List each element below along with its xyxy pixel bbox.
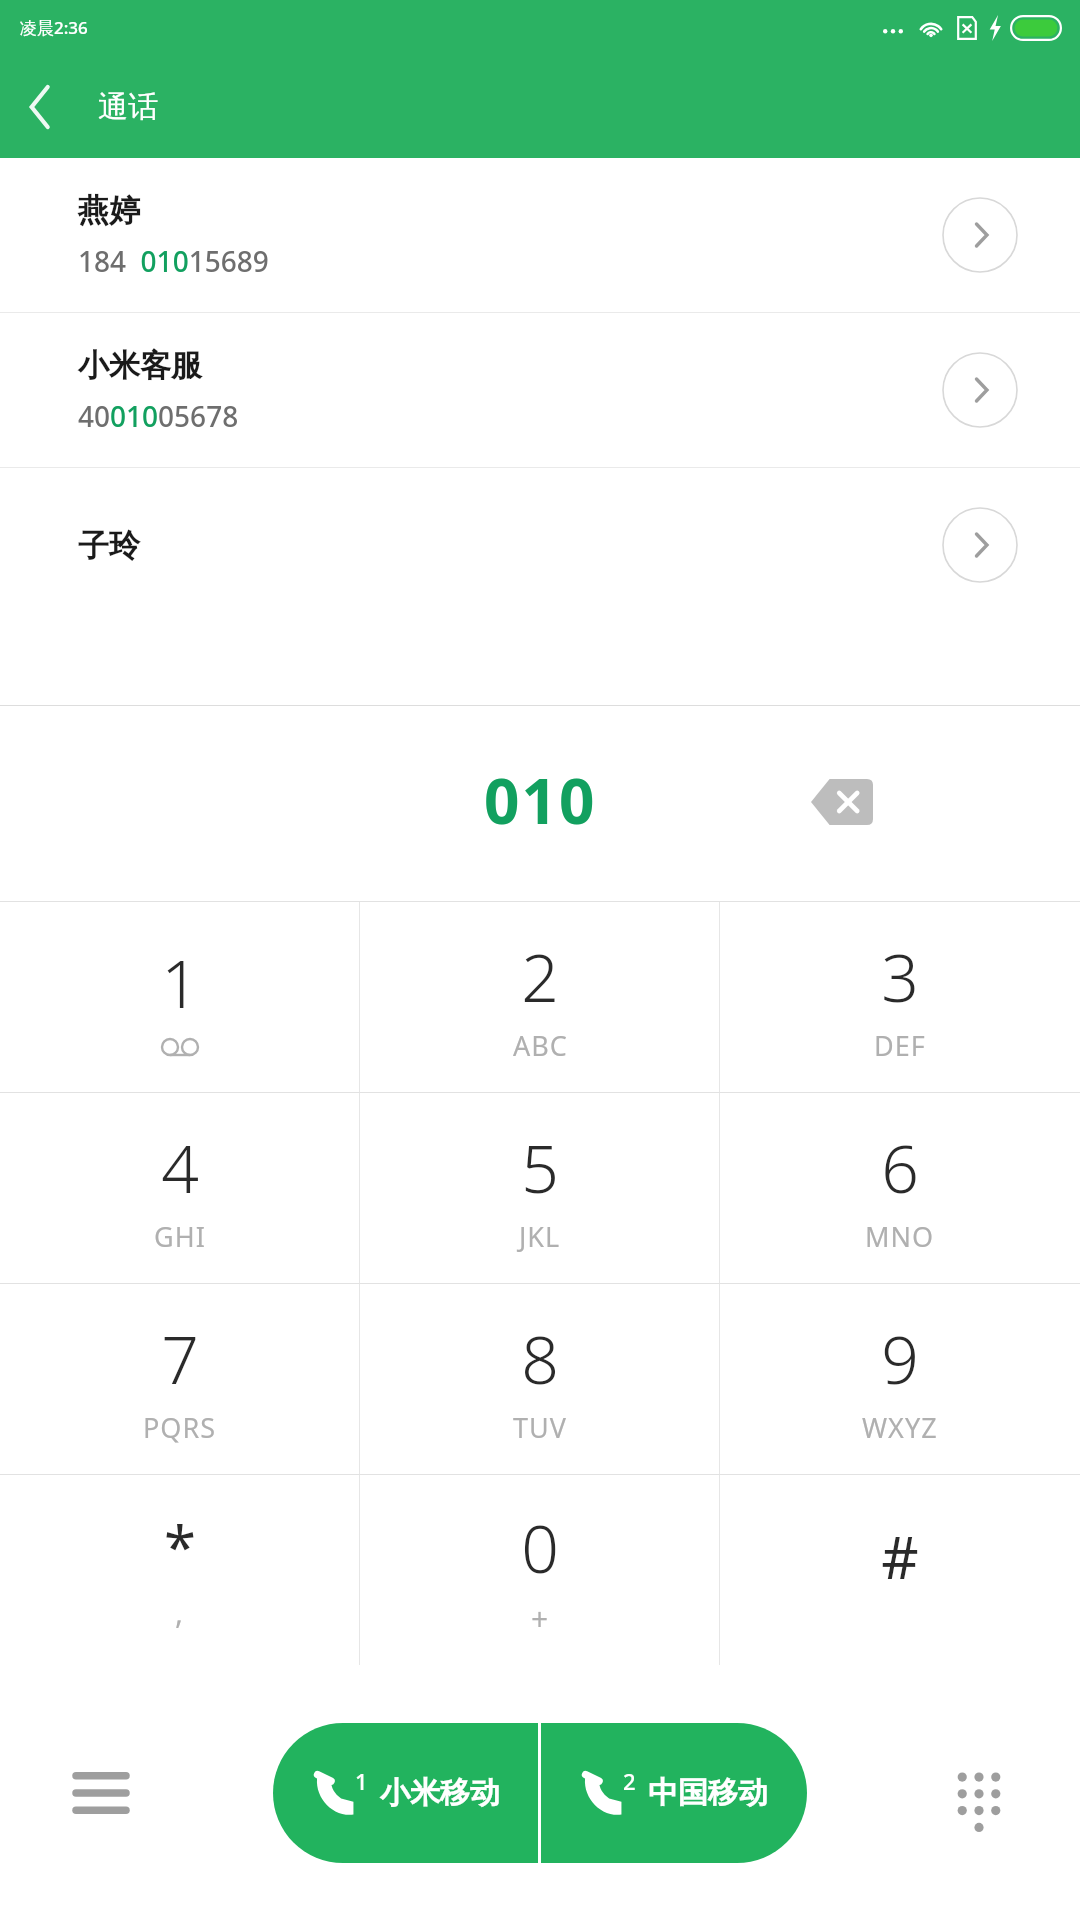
button[interactable]: Delete: [794, 754, 890, 850]
button[interactable]: 1: [0, 902, 360, 1092]
staticText: 4: [161, 1122, 199, 1212]
staticText: 4001005678: [78, 397, 239, 435]
staticText: 凌晨2:36: [20, 16, 88, 39]
staticText: ,: [175, 1592, 185, 1633]
staticText: 7: [161, 1313, 199, 1403]
button[interactable]: 子玲: [0, 468, 1080, 622]
button[interactable]: 9: [720, 1284, 1080, 1474]
staticText: GHI: [154, 1218, 206, 1255]
button[interactable]: *: [0, 1475, 360, 1665]
staticText: *: [164, 1507, 196, 1586]
button[interactable]: 7: [0, 1284, 360, 1474]
button[interactable]: Dialpad: [936, 1750, 1022, 1836]
button[interactable]: 1: [273, 1723, 538, 1863]
staticText: 010: [484, 758, 597, 842]
button[interactable]: 0: [360, 1475, 720, 1665]
staticText: #: [881, 1517, 919, 1596]
button[interactable]: 6: [720, 1093, 1080, 1283]
staticText: 1: [161, 937, 199, 1027]
staticText: TUV: [513, 1409, 567, 1446]
staticText: 燕婷: [78, 191, 140, 230]
button[interactable]: Contact details: [942, 507, 1018, 583]
button[interactable]: 2: [541, 1723, 807, 1863]
staticText: WXYZ: [862, 1409, 938, 1446]
staticText: 184 01015689: [78, 242, 269, 280]
button[interactable]: Contact details: [942, 197, 1018, 273]
button[interactable]: 8: [360, 1284, 720, 1474]
staticText: 9: [881, 1313, 919, 1403]
button[interactable]: 小米客服: [0, 313, 1080, 467]
staticText: 小米移动: [380, 1774, 500, 1812]
staticText: 6: [881, 1122, 919, 1212]
button[interactable]: Back: [0, 67, 80, 147]
button[interactable]: 3: [720, 902, 1080, 1092]
staticText: 8: [521, 1313, 559, 1403]
button[interactable]: 2: [360, 902, 720, 1092]
button[interactable]: 燕婷: [0, 158, 1080, 312]
staticText: JKL: [519, 1218, 561, 1255]
button[interactable]: 5: [360, 1093, 720, 1283]
button[interactable]: 4: [0, 1093, 360, 1283]
staticText: 通话: [98, 88, 158, 126]
staticText: 1: [355, 1766, 368, 1796]
staticText: 2: [623, 1766, 636, 1796]
staticText: ABC: [513, 1027, 568, 1064]
staticText: 中国移动: [648, 1774, 768, 1812]
staticText: PQRS: [143, 1409, 217, 1446]
staticText: 小米客服: [78, 346, 202, 385]
button[interactable]: Menu: [58, 1750, 144, 1836]
button[interactable]: Contact details: [942, 352, 1018, 428]
staticText: 子玲: [78, 526, 140, 565]
staticText: MNO: [865, 1218, 935, 1255]
button[interactable]: #: [720, 1475, 1080, 1665]
staticText: DEF: [874, 1027, 926, 1064]
staticText: 0: [521, 1502, 559, 1592]
staticText: 3: [881, 931, 919, 1021]
staticText: +: [531, 1598, 550, 1639]
staticText: 2: [521, 931, 559, 1021]
staticText: 5: [521, 1122, 559, 1212]
